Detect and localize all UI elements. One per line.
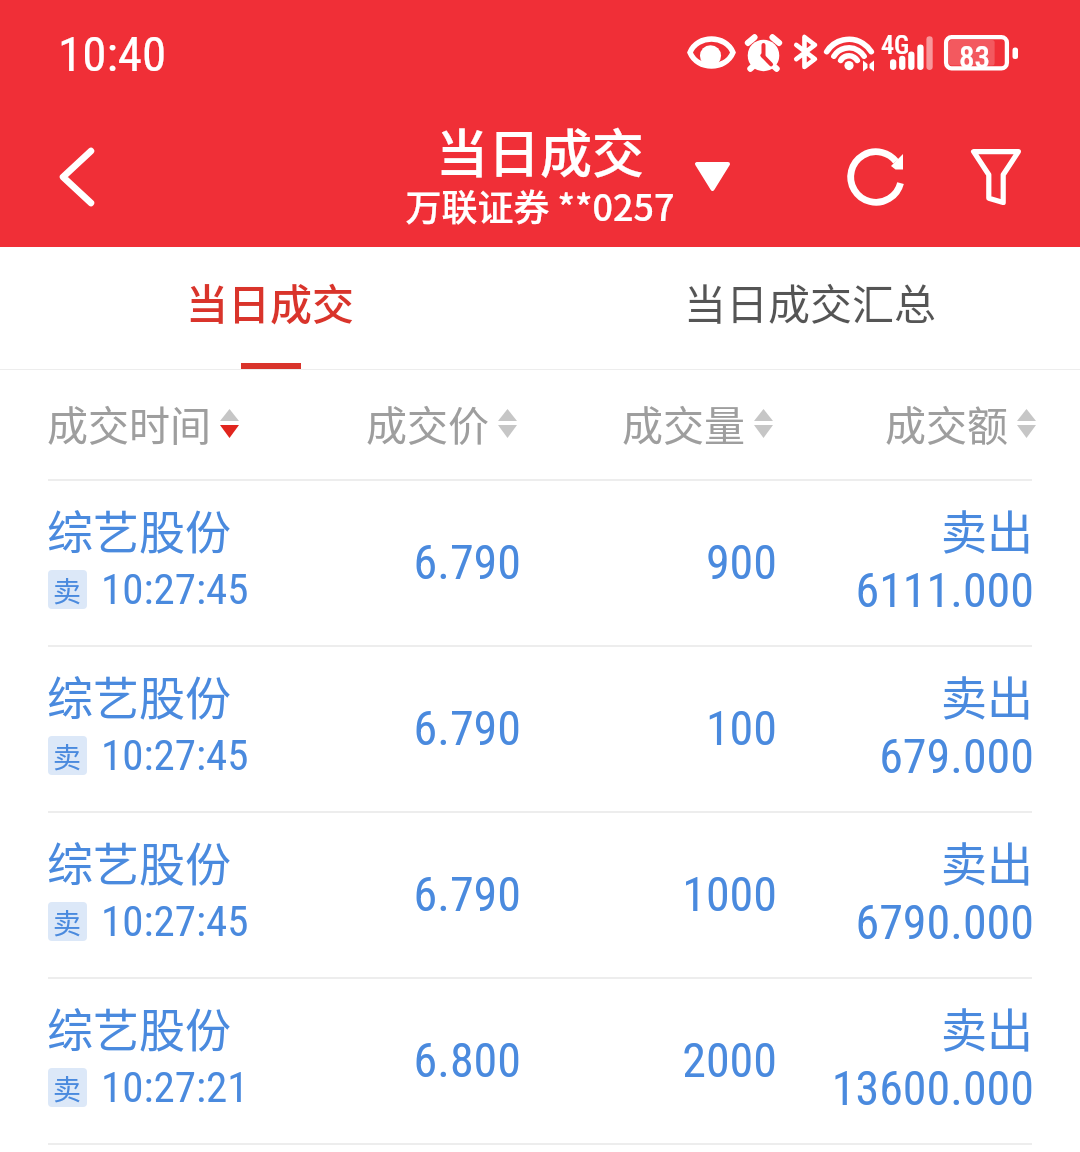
staticText: 2000: [556, 1032, 777, 1088]
staticText: 卖: [53, 1068, 82, 1107]
button[interactable]: 当日成交汇总: [540, 247, 1080, 370]
staticText: 10:27:45: [101, 730, 249, 780]
staticText: 6790.000: [790, 894, 1034, 950]
staticText: 综艺股份: [47, 662, 231, 729]
staticText: 综艺股份: [47, 496, 231, 563]
staticText: 6.790: [300, 700, 521, 756]
staticText: 成交额: [885, 393, 1008, 452]
button[interactable]: 综艺股份: [0, 979, 1080, 1145]
button[interactable]: 成交时间: [47, 367, 239, 478]
staticText: 6.800: [300, 1032, 521, 1088]
staticText: 10:27:45: [101, 896, 249, 946]
staticText: 1000: [556, 866, 777, 922]
staticText: 卖出: [790, 994, 1033, 1061]
staticText: 13600.000: [790, 1060, 1034, 1116]
staticText: 卖出: [790, 496, 1033, 563]
staticText: 83: [959, 39, 990, 75]
staticText: 成交量: [622, 393, 745, 452]
staticText: 卖出: [790, 828, 1033, 895]
staticText: 6111.000: [790, 562, 1034, 618]
button[interactable]: 成交额: [885, 367, 1036, 478]
staticText: 卖: [53, 902, 82, 941]
staticText: 10:40: [58, 26, 167, 83]
button[interactable]: 综艺股份: [0, 647, 1080, 813]
button[interactable]: 当日成交: [338, 112, 742, 234]
staticText: 卖出: [790, 662, 1033, 729]
staticText: 100: [556, 700, 777, 756]
button[interactable]: 当日成交: [0, 247, 540, 370]
staticText: 10:27:21: [101, 1062, 249, 1112]
staticText: 6.790: [300, 534, 521, 590]
staticText: 综艺股份: [47, 994, 231, 1061]
staticText: 900: [556, 534, 777, 590]
button[interactable]: Back: [33, 127, 121, 227]
staticText: 万联证券 **0257: [338, 179, 742, 231]
button[interactable]: Refresh: [838, 139, 913, 214]
button[interactable]: Switch account: [681, 148, 743, 204]
staticText: 4G: [881, 30, 910, 60]
staticText: 综艺股份: [47, 828, 231, 895]
staticText: 当日成交汇总: [684, 271, 937, 332]
staticText: 当日成交: [186, 271, 355, 332]
button[interactable]: 成交量: [622, 367, 773, 478]
staticText: 成交价: [366, 393, 489, 452]
button[interactable]: Filter: [958, 139, 1033, 214]
button[interactable]: 综艺股份: [0, 813, 1080, 979]
staticText: 10:27:45: [101, 564, 249, 614]
staticText: 卖: [53, 570, 82, 609]
staticText: 卖: [53, 736, 82, 775]
button[interactable]: 成交价: [366, 367, 517, 478]
staticText: 6.790: [300, 866, 521, 922]
staticText: 成交时间: [47, 393, 211, 452]
staticText: 当日成交: [338, 113, 742, 188]
staticText: 679.000: [790, 728, 1034, 784]
button[interactable]: 综艺股份: [0, 481, 1080, 647]
